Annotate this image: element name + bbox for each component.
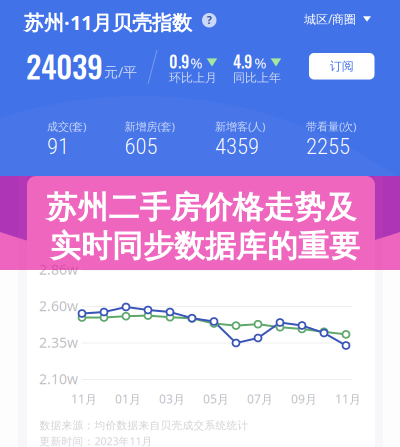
- staticText: ?: [207, 13, 212, 27]
- staticText: 07月: [247, 391, 273, 407]
- staticText: 605: [124, 133, 157, 160]
- button[interactable]: 说明: [202, 13, 216, 27]
- staticText: 同比上年: [233, 70, 281, 85]
- staticText: 成交(套): [47, 119, 86, 134]
- staticText: 实时同步数据库的重要: [50, 227, 360, 265]
- staticText: 元/平: [104, 62, 137, 81]
- staticText: 2.60w: [39, 296, 78, 315]
- staticText: 4.9: [233, 49, 252, 73]
- staticText: %: [190, 53, 202, 72]
- button[interactable]: 城区/商圈: [304, 11, 371, 27]
- staticText: 新增客(人): [215, 119, 265, 134]
- staticText: 03月: [159, 391, 185, 407]
- staticText: 2.35w: [39, 333, 78, 352]
- staticText: 4359: [215, 133, 259, 160]
- staticText: 11月: [335, 391, 361, 407]
- staticText: 24039: [26, 43, 103, 88]
- staticText: 01月: [115, 391, 141, 407]
- staticText: 苏州二手房价格走势及: [46, 189, 356, 226]
- staticText: 环比上月: [169, 70, 217, 85]
- staticText: 2255: [306, 133, 350, 160]
- staticText: 2.86w: [39, 260, 78, 279]
- staticText: 91: [47, 133, 69, 160]
- staticText: 09月: [291, 391, 317, 407]
- staticText: 更新时间：2023年11月: [39, 434, 152, 447]
- staticText: 数据来源：均价数据来自贝壳成交系统统计: [39, 419, 248, 432]
- staticText: 订阅: [330, 59, 354, 74]
- staticText: 带看量(次): [306, 119, 356, 134]
- staticText: 11月: [71, 391, 97, 407]
- button[interactable]: 订阅: [309, 53, 374, 79]
- staticText: 新增房(套): [124, 119, 174, 134]
- staticText: 苏州·11月贝壳指数: [24, 9, 192, 36]
- staticText: %: [254, 53, 266, 72]
- staticText: 2.10w: [39, 369, 78, 388]
- staticText: 05月: [203, 391, 229, 407]
- staticText: 0.9: [169, 49, 189, 73]
- staticText: 城区/商圈: [304, 11, 356, 27]
